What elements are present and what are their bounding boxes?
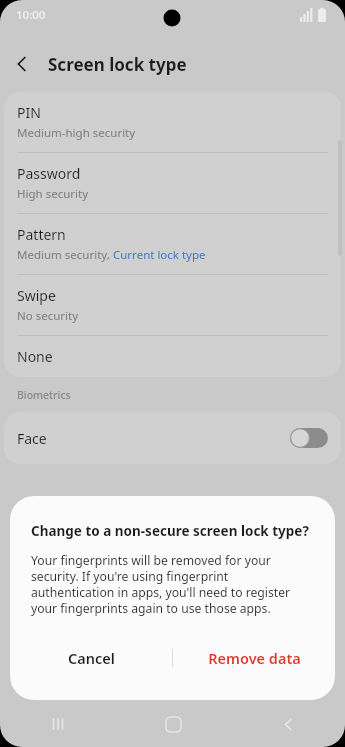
staticText: Screen lock type — [48, 53, 187, 76]
staticText: Current lock type — [113, 247, 206, 263]
button[interactable]: PIN — [4, 92, 341, 152]
staticText: Pattern — [17, 225, 66, 244]
staticText: Remove data — [208, 648, 301, 668]
button[interactable]: Cancel — [10, 636, 172, 680]
button[interactable]: Pattern — [4, 214, 341, 274]
staticText: Face — [17, 429, 47, 448]
staticText: PIN — [17, 103, 41, 122]
button[interactable]: Recent apps — [34, 701, 82, 747]
button[interactable]: Remove data — [173, 636, 335, 680]
button[interactable]: Home — [149, 701, 197, 747]
staticText: No security — [17, 308, 79, 324]
staticText: Medium security, — [17, 247, 113, 263]
staticText: High security — [17, 186, 89, 202]
button[interactable]: Face recognition toggle — [290, 428, 328, 448]
staticText: Your fingerprints will be removed for yo… — [31, 552, 314, 616]
staticText: Medium-high security — [17, 125, 136, 141]
button[interactable]: Back — [0, 42, 44, 86]
button[interactable]: Swipe — [4, 275, 341, 335]
button[interactable]: Password — [4, 153, 341, 213]
staticText: None — [17, 347, 53, 366]
staticText: Biometrics — [17, 388, 71, 402]
staticText: Password — [17, 164, 81, 183]
staticText: Cancel — [68, 648, 115, 668]
staticText: Swipe — [17, 286, 56, 305]
staticText: Change to a non-secure screen lock type? — [31, 522, 309, 540]
staticText: 10:00 — [16, 7, 46, 23]
button[interactable]: None — [4, 336, 341, 377]
button[interactable]: Face — [4, 412, 341, 464]
